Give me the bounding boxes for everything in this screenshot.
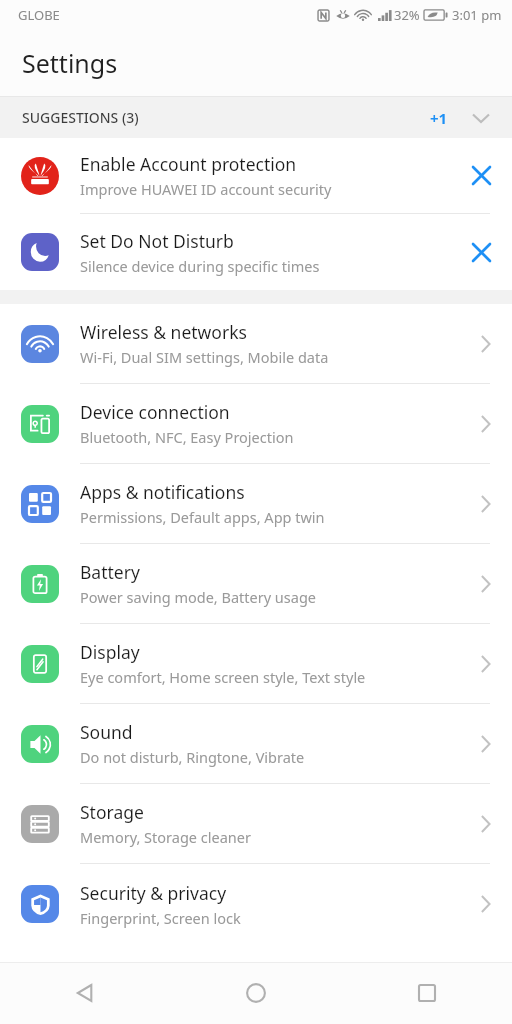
button[interactable]: Dismiss Set Do Not Disturb [450,214,512,290]
button[interactable]: Apps & notifications [0,464,512,544]
button[interactable]: Dismiss Enable Account protection [450,138,512,213]
staticText: Security & privacy [80,881,227,905]
other: Expand suggestions [470,107,492,129]
button[interactable]: Home [170,962,341,1024]
staticText: Improve HUAWEI ID account security [80,179,332,199]
staticText: Device connection [80,400,230,424]
button[interactable]: Enable Account protection [0,138,512,214]
staticText: Display [80,640,140,664]
button[interactable]: Storage [0,784,512,864]
staticText: 32% [394,6,420,24]
staticText: Silence device during specific times [80,256,320,276]
button[interactable]: Display [0,624,512,704]
button[interactable]: Sound [0,704,512,784]
staticText: Power saving mode, Battery usage [80,587,317,607]
button[interactable]: Back [0,962,170,1024]
staticText: Set Do Not Disturb [80,229,234,253]
staticText: Battery [80,560,140,584]
staticText: 3:01 pm [452,6,502,24]
staticText: Permissions, Default apps, App twin [80,507,325,527]
button[interactable]: Security & privacy [0,864,512,944]
staticText: Settings [22,46,118,80]
staticText: Enable Account protection [80,152,297,176]
staticText: Storage [80,800,144,824]
button[interactable]: Recents [341,962,512,1024]
staticText: Do not disturb, Ringtone, Vibrate [80,747,305,767]
button[interactable]: Battery [0,544,512,624]
button[interactable]: Wireless & networks [0,304,512,384]
staticText: Memory, Storage cleaner [80,827,251,847]
staticText: Apps & notifications [80,480,245,504]
staticText: Wireless & networks [80,320,247,344]
staticText: Sound [80,720,133,744]
button[interactable]: SUGGESTIONS (3) [0,97,512,138]
button[interactable]: Device connection [0,384,512,464]
button[interactable]: Set Do Not Disturb [0,214,512,290]
staticText: SUGGESTIONS (3) [22,108,430,127]
staticText: Bluetooth, NFC, Easy Projection [80,427,294,447]
staticText: GLOBE [18,6,60,24]
staticText: Eye comfort, Home screen style, Text sty… [80,667,366,687]
staticText: Wi-Fi, Dual SIM settings, Mobile data [80,347,329,367]
staticText: +1 [430,108,448,128]
staticText: Fingerprint, Screen lock [80,908,241,928]
